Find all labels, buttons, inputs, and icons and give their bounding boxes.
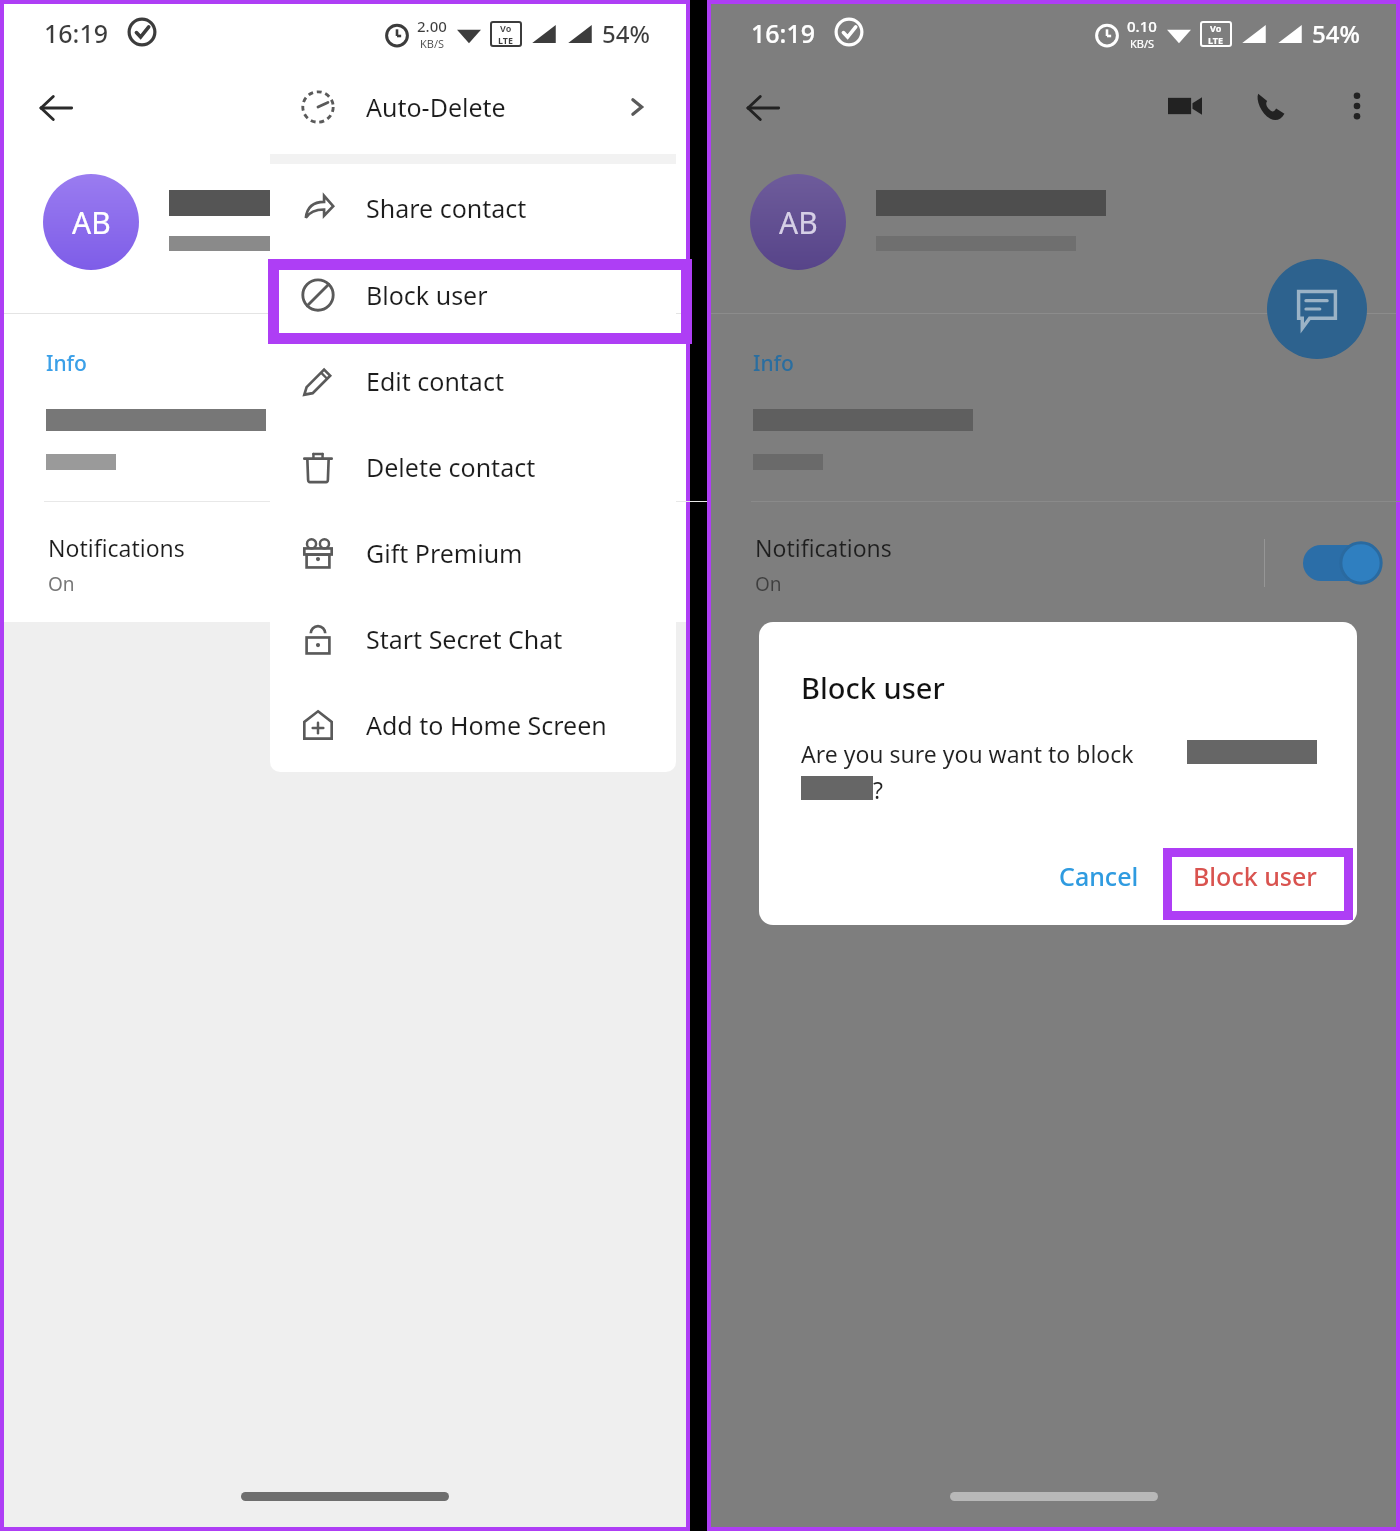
staticText: ?	[873, 774, 883, 805]
button[interactable]: Auto-Delete	[270, 60, 676, 154]
staticText: LTE	[498, 34, 514, 46]
button[interactable]: Call	[1235, 70, 1307, 142]
button[interactable]: Notifications toggle	[1291, 538, 1391, 588]
staticText: KB/S	[1130, 36, 1155, 51]
button[interactable]: Share contact	[270, 164, 676, 251]
staticText: Block user	[366, 278, 488, 312]
staticText: Start Secret Chat	[366, 622, 563, 656]
button[interactable]: Video call	[1149, 70, 1221, 142]
staticText: Notifications	[48, 532, 185, 563]
button[interactable]: Add to Home Screen	[270, 682, 676, 768]
staticText: 54%	[602, 17, 650, 50]
staticText: Gift Premium	[366, 536, 523, 570]
staticText: Delete contact	[366, 450, 536, 484]
staticText: Edit contact	[366, 364, 504, 398]
button[interactable]: Cancel	[1037, 845, 1161, 907]
button[interactable]: Back	[18, 70, 94, 146]
staticText: 16:19	[751, 16, 816, 50]
staticText: 2.00	[417, 16, 447, 36]
button[interactable]: Gift Premium	[270, 510, 676, 596]
staticText: AB	[779, 202, 818, 243]
staticText: 0.10	[1127, 16, 1157, 36]
staticText: 16:19	[44, 16, 109, 50]
button[interactable]: Delete contact	[270, 424, 676, 510]
button[interactable]: Edit contact	[270, 338, 676, 424]
staticText: Notifications	[755, 532, 892, 563]
staticText: On	[755, 571, 782, 597]
staticText: Block user	[801, 668, 945, 707]
staticText: Auto-Delete	[366, 90, 506, 124]
staticText: Add to Home Screen	[366, 708, 607, 742]
staticText: Info	[753, 349, 794, 378]
button[interactable]: More options	[1321, 70, 1393, 142]
staticText: 54%	[1312, 17, 1360, 50]
button[interactable]: Start Secret Chat	[270, 596, 676, 682]
staticText: LTE	[1208, 34, 1224, 46]
button[interactable]: Block user	[1171, 845, 1339, 907]
staticText: Info	[46, 349, 87, 378]
staticText: Block user	[1193, 859, 1317, 893]
staticText: Cancel	[1059, 859, 1139, 893]
button[interactable]: Back	[725, 70, 801, 146]
button[interactable]: Message	[1267, 259, 1367, 359]
staticText: Vo	[500, 22, 512, 34]
button[interactable]: Block user	[270, 251, 676, 338]
staticText: Share contact	[366, 191, 527, 225]
staticText: AB	[72, 202, 111, 243]
staticText: KB/S	[420, 36, 445, 51]
staticText: Are you sure you want to block	[801, 738, 1134, 769]
staticText: Vo	[1210, 22, 1222, 34]
staticText: On	[48, 571, 75, 597]
